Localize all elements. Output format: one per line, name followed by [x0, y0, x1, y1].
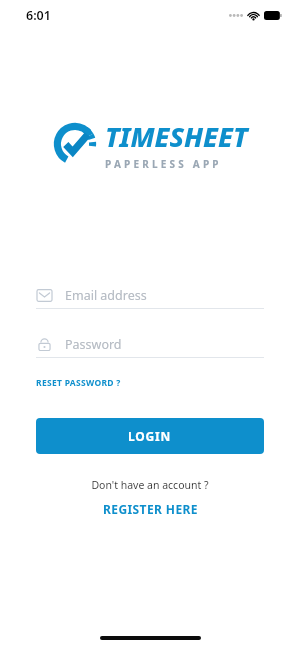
button[interactable]: RESET PASSWORD ?: [36, 374, 121, 392]
other: Password: [37, 337, 52, 352]
staticText: 6:01: [26, 7, 51, 24]
button[interactable]: REGISTER HERE: [36, 501, 264, 517]
staticText: LOGIN: [128, 428, 172, 444]
staticText: PAPERLESS APP: [105, 157, 222, 171]
staticText: Don't have an account ?: [36, 478, 264, 492]
staticText: Password: [65, 336, 122, 353]
staticText: TIMESHEET: [105, 118, 248, 155]
staticText: REGISTER HERE: [103, 501, 198, 517]
button[interactable]: Email: [36, 282, 264, 309]
staticText: RESET PASSWORD ?: [36, 377, 121, 389]
other: Email: [37, 288, 52, 303]
button[interactable]: Password: [36, 331, 264, 358]
staticText: Email address: [65, 287, 147, 304]
button[interactable]: LOGIN: [36, 418, 264, 454]
other: Timesheet logo: [52, 121, 98, 167]
